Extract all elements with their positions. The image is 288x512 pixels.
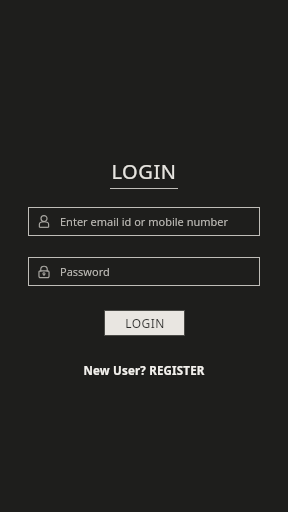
staticText: LOGIN [125,315,165,331]
button[interactable]: Password [28,257,260,286]
staticText: New User? REGISTER [83,363,205,379]
staticText: Password [60,264,110,279]
button[interactable]: Email or mobile number [28,207,260,236]
staticText: Enter email id or mobile number [60,214,229,229]
staticText: LOGIN [111,158,177,185]
button[interactable]: New User? REGISTER [75,360,213,382]
button[interactable]: LOGIN [104,310,185,336]
